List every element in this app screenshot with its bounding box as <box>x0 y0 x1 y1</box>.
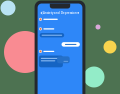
button[interactable]: More options <box>75 10 81 16</box>
button[interactable]: Back <box>39 10 45 16</box>
staticText: Anxiety and Depression <box>43 11 77 15</box>
